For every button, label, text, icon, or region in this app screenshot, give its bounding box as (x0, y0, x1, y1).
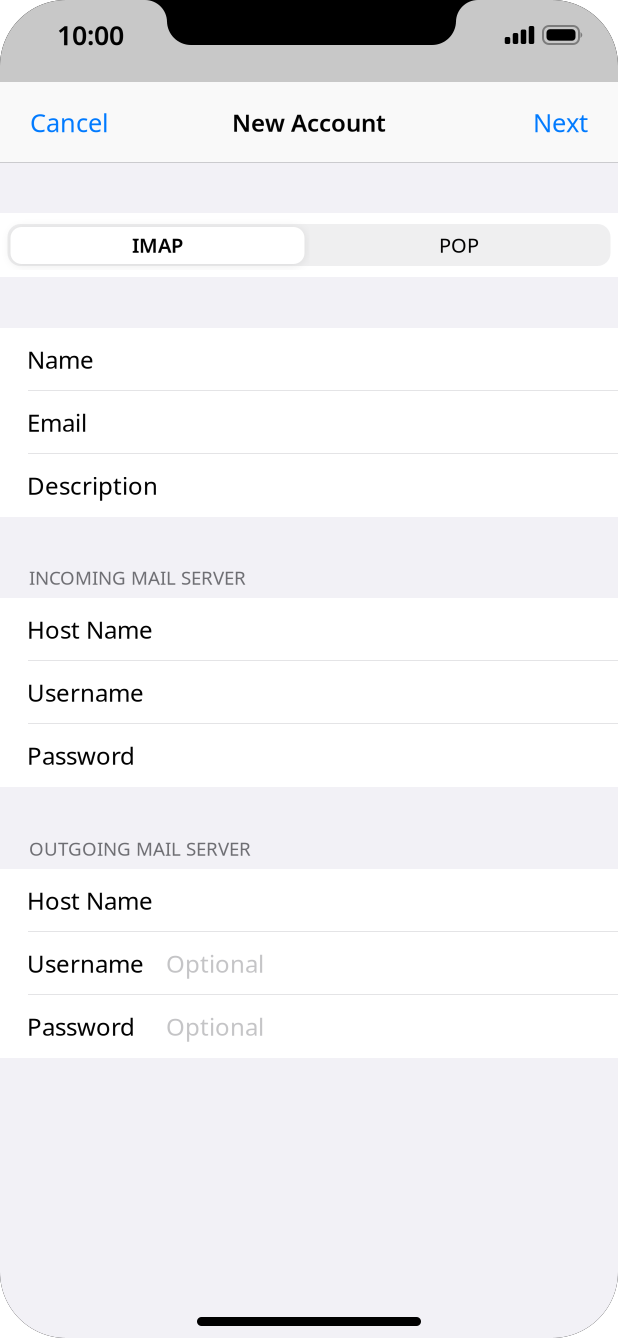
button[interactable]: Username (0, 932, 618, 995)
button[interactable]: Host Name (0, 598, 618, 661)
button[interactable]: Username (0, 661, 618, 724)
button[interactable]: Email (0, 391, 618, 454)
button[interactable]: IMAP (7, 224, 307, 266)
button[interactable]: Password (0, 995, 618, 1058)
staticText: Cancel (30, 106, 109, 139)
button[interactable]: Name (0, 328, 618, 391)
staticText: 10:00 (57, 17, 124, 53)
button[interactable]: POP (307, 224, 610, 266)
staticText: Password (27, 1011, 135, 1042)
staticText: Host Name (27, 885, 153, 916)
staticText: Email (27, 407, 87, 438)
staticText: POP (439, 232, 479, 258)
staticText: Optional (166, 1011, 264, 1042)
staticText: Optional (166, 948, 264, 979)
button[interactable]: Password (0, 724, 618, 787)
button[interactable]: Next (533, 82, 588, 163)
button[interactable]: Cancel (30, 82, 109, 163)
staticText: Username (27, 948, 144, 979)
staticText: Password (27, 740, 135, 771)
staticText: Description (27, 470, 158, 501)
staticText: Name (27, 344, 94, 375)
staticText: Next (533, 106, 588, 139)
staticText: INCOMING MAIL SERVER (29, 565, 246, 590)
staticText: New Account (232, 107, 386, 138)
staticText: OUTGOING MAIL SERVER (29, 836, 251, 861)
button[interactable]: Host Name (0, 869, 618, 932)
staticText: IMAP (132, 232, 183, 258)
staticText: Host Name (27, 614, 153, 645)
button[interactable]: Description (0, 454, 618, 517)
staticText: Username (27, 677, 144, 708)
